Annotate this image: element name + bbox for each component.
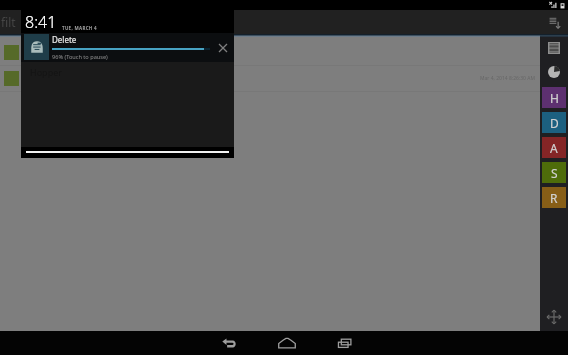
- button[interactable]: Back: [200, 331, 258, 355]
- button[interactable]: R: [542, 187, 566, 208]
- button[interactable]: A: [542, 137, 566, 158]
- staticText: S: [551, 165, 558, 181]
- button[interactable]: D: [542, 112, 566, 133]
- staticText: filt: [1, 14, 16, 30]
- staticText: R: [550, 190, 558, 206]
- staticText: TUE, MARCH 4: [62, 25, 97, 31]
- button[interactable]: Sort A to Z: [540, 10, 568, 34]
- button[interactable]: Home: [258, 331, 316, 355]
- staticText: H: [550, 90, 559, 106]
- button[interactable]: H: [542, 87, 566, 108]
- button[interactable]: Delete: [21, 33, 234, 62]
- button[interactable]: Chart: [540, 64, 568, 80]
- button[interactable]: Report: [540, 40, 568, 56]
- button[interactable]: Recent apps: [316, 331, 374, 355]
- staticText: D: [550, 115, 559, 131]
- button[interactable]: Mar 4, 2014 8:26:30 AM: [0, 66, 540, 91]
- staticText: 96% (Touch to pause): [52, 53, 108, 61]
- staticText: Delete: [52, 34, 77, 45]
- staticText: Hopper: [27, 47, 59, 59]
- button[interactable]: Hopper: [0, 40, 540, 65]
- staticText: Mar 4, 2014 8:26:30 AM: [480, 75, 535, 82]
- button[interactable]: Resize panel: [540, 307, 568, 327]
- button[interactable]: Close notification shade: [21, 145, 234, 158]
- button[interactable]: filt: [0, 14, 16, 30]
- staticText: A: [550, 140, 558, 156]
- button[interactable]: Dismiss notification: [212, 33, 234, 62]
- staticText: 8:41: [25, 11, 57, 33]
- button[interactable]: S: [542, 162, 566, 183]
